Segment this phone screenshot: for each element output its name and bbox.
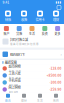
staticText: +8500.00	[46, 73, 61, 78]
button[interactable]: 生活	[26, 26, 38, 36]
staticText: 投资	[42, 32, 48, 36]
staticText: 10月12日	[8, 83, 18, 87]
staticText: 今天 12:30	[8, 69, 20, 73]
staticText: 生活	[37, 98, 43, 102]
staticText: 首页	[5, 98, 11, 102]
staticText: 理财	[53, 17, 59, 22]
button[interactable]: 理财	[16, 93, 32, 103]
button[interactable]: 工资入账	[0, 72, 64, 79]
staticText: 超市购物	[8, 64, 20, 69]
staticText: -100.00	[49, 80, 61, 85]
staticText: 网上购物	[8, 85, 20, 90]
button[interactable]: 账户	[0, 26, 13, 36]
button[interactable]: Scan	[57, 5, 61, 9]
staticText: ›	[60, 51, 61, 57]
button[interactable]: 投资	[38, 26, 51, 36]
staticText: 贷款	[16, 32, 22, 36]
staticText: -128.00	[49, 66, 61, 71]
staticText: 9:41	[2, 0, 9, 4]
button[interactable]: 更多	[51, 26, 64, 36]
button[interactable]: 收款	[16, 11, 32, 22]
staticText: 收款	[21, 17, 27, 22]
staticText: ▮▮▮	[55, 0, 61, 4]
staticText: 理财	[21, 98, 27, 102]
button[interactable]: 手机充值	[0, 79, 64, 86]
staticText: 我的银行卡	[10, 52, 25, 57]
staticText: 扫码付款立减	[10, 37, 28, 42]
staticText: 工资入账	[8, 71, 20, 76]
button[interactable]: 超市购物	[0, 65, 64, 72]
staticText: 我的	[53, 98, 59, 102]
staticText: 更多	[55, 32, 61, 36]
button[interactable]: 生活	[32, 93, 48, 103]
button[interactable]: 信用卡	[32, 11, 48, 22]
button[interactable]: 我的	[48, 93, 64, 103]
button[interactable]: 贷款	[13, 26, 26, 36]
staticText: 最高可得88元红包优惠	[10, 42, 39, 46]
staticText: -259.90	[49, 87, 61, 92]
staticText: 转账	[5, 17, 11, 22]
button[interactable]: 我的银行卡	[0, 50, 64, 59]
button[interactable]: 网上购物	[0, 86, 64, 93]
staticText: 手机充值	[8, 78, 20, 83]
staticText: 生活	[29, 32, 35, 36]
staticText: 信用卡	[35, 17, 44, 22]
button[interactable]: 转账	[0, 11, 16, 22]
staticText: 账户	[3, 32, 9, 36]
button[interactable]: 首页	[0, 93, 16, 103]
staticText: 10月11日	[8, 90, 18, 94]
button[interactable]: 理财	[48, 11, 64, 22]
staticText: 最近交易	[5, 60, 17, 65]
staticText: 昨天 09:15	[8, 76, 20, 80]
